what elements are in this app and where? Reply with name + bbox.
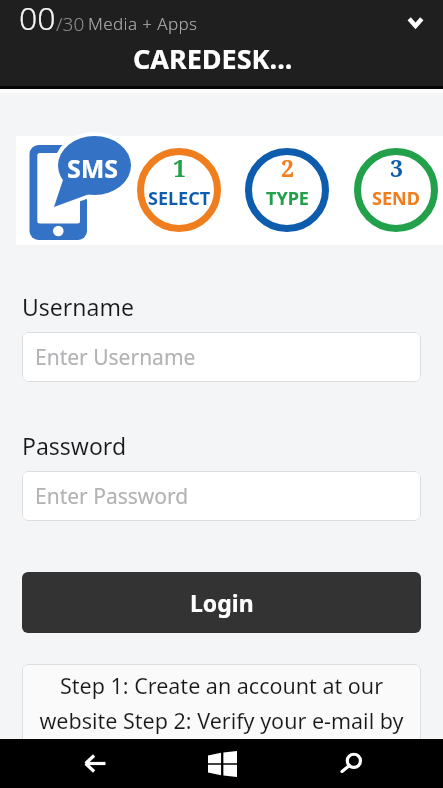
staticText: 2: [281, 152, 294, 183]
staticText: 00: [19, 0, 56, 40]
staticText: Enter Username: [35, 343, 196, 372]
staticText: Media + Apps: [88, 12, 198, 35]
button[interactable]: Expand: [393, 0, 437, 44]
staticText: /30: [56, 11, 85, 37]
button[interactable]: Search: [314, 739, 387, 788]
button[interactable]: Enter Username: [22, 332, 421, 382]
staticText: 3: [390, 152, 403, 183]
staticText: Username: [22, 291, 134, 322]
button[interactable]: Back: [58, 739, 131, 788]
staticText: SMS: [67, 151, 119, 185]
button[interactable]: SMS: 1 Select, 2 Type, 3 Send: [16, 136, 443, 245]
staticText: 1: [173, 152, 186, 183]
staticText: Enter Password: [35, 482, 189, 511]
staticText: Password: [22, 430, 127, 461]
button[interactable]: Login: [22, 572, 421, 633]
staticText: Step 1: Create an account at our website…: [30, 671, 413, 736]
staticText: SEND: [372, 186, 420, 211]
staticText: SELECT: [148, 186, 211, 211]
button[interactable]: Enter Password: [22, 471, 421, 521]
button[interactable]: Home: [186, 739, 259, 788]
staticText: Login: [190, 587, 254, 618]
staticText: CAREDESK...: [133, 40, 293, 77]
staticText: TYPE: [266, 186, 309, 211]
